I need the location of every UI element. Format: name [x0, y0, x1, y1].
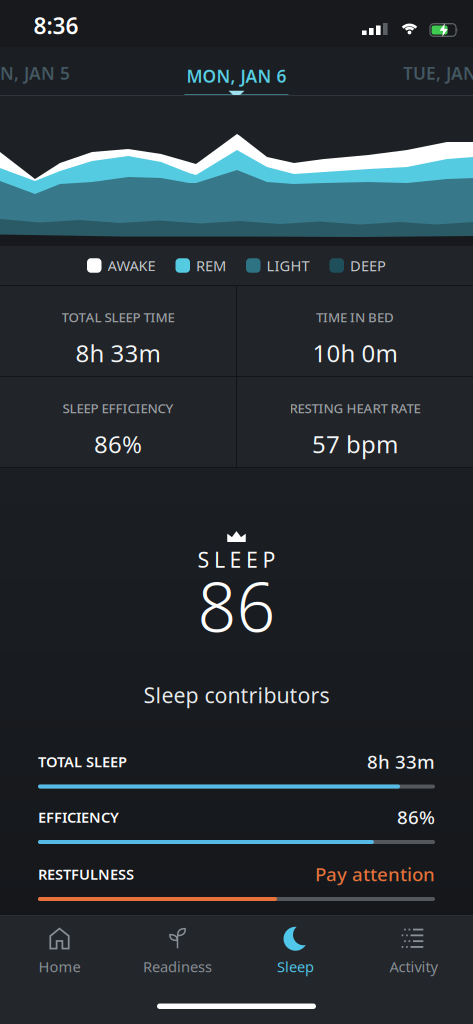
staticText: 86%: [94, 428, 142, 460]
button[interactable]: MON, JAN 6: [184, 64, 288, 96]
staticText: DEEP: [350, 256, 386, 275]
staticText: RESTING HEART RATE: [289, 399, 420, 417]
button[interactable]: Sleep: [236, 916, 354, 986]
staticText: LIGHT: [266, 256, 309, 275]
button[interactable]: SUN, JAN 5: [0, 61, 70, 84]
button[interactable]: EFFICIENCY: [38, 806, 435, 844]
button[interactable]: Readiness: [118, 916, 236, 986]
staticText: 86: [197, 560, 275, 651]
staticText: EFFICIENCY: [38, 807, 119, 827]
staticText: Sleep contributors: [143, 681, 329, 709]
staticText: 8:36: [33, 10, 78, 40]
staticText: MON, JAN 6: [186, 64, 286, 87]
staticText: REM: [196, 256, 226, 275]
staticText: Sleep: [277, 957, 314, 976]
staticText: AWAKE: [107, 256, 155, 275]
staticText: TOTAL SLEEP TIME: [61, 308, 174, 326]
staticText: RESTFULNESS: [38, 864, 134, 884]
button[interactable]: Activity: [354, 916, 472, 986]
staticText: 8h 33m: [367, 749, 435, 774]
staticText: 57 bpm: [312, 428, 398, 460]
staticText: SUN, JAN 5: [0, 61, 70, 84]
button[interactable]: RESTFULNESS: [38, 863, 435, 901]
button[interactable]: TUE, JAN 7: [403, 61, 473, 84]
staticText: Pay attention: [315, 862, 435, 886]
staticText: TOTAL SLEEP: [38, 752, 127, 771]
staticText: TIME IN BED: [316, 308, 394, 326]
staticText: SLEEP EFFICIENCY: [62, 399, 173, 417]
button[interactable]: Home: [0, 916, 118, 986]
staticText: Home: [38, 957, 80, 976]
staticText: Activity: [389, 957, 437, 976]
staticText: 86%: [397, 805, 435, 829]
staticText: SLEEP: [197, 545, 275, 574]
staticText: 8h 33m: [75, 337, 160, 369]
staticText: 10h 0m: [312, 337, 397, 369]
staticText: Readiness: [143, 957, 212, 976]
button[interactable]: TOTAL SLEEP: [38, 750, 435, 788]
staticText: TUE, JAN 7: [403, 61, 473, 84]
